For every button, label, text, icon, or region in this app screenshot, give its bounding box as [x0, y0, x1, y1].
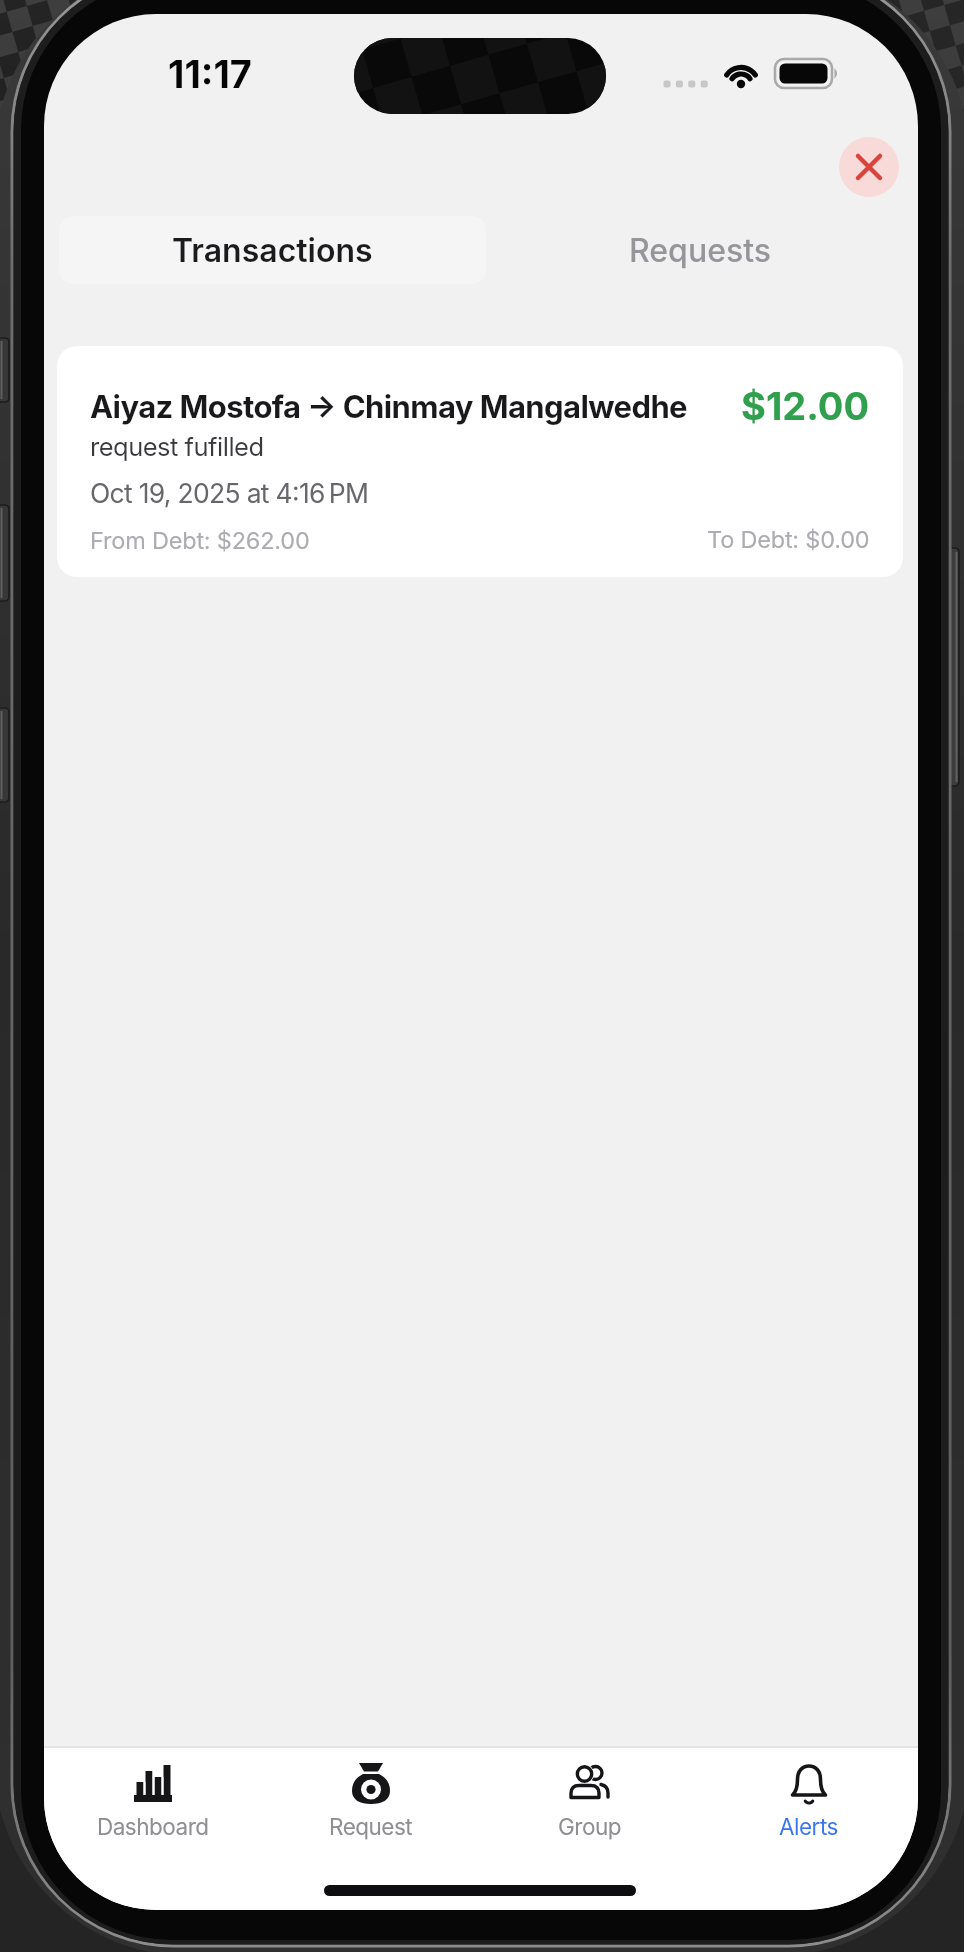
- staticText: To Debt: $0.00: [707, 525, 870, 553]
- staticText: Oct 19, 2025 at 4:16 PM: [90, 477, 369, 509]
- button[interactable]: Group: [480, 1748, 699, 1910]
- staticText: Request: [329, 1813, 413, 1840]
- staticText: request fufilled: [90, 431, 264, 462]
- staticText: Group: [558, 1813, 621, 1840]
- staticText: Alerts: [779, 1813, 838, 1840]
- button[interactable]: [839, 137, 899, 197]
- staticText: Dashboard: [97, 1813, 209, 1840]
- button[interactable]: Requests: [486, 216, 913, 284]
- button[interactable]: Transactions: [59, 216, 486, 284]
- staticText: Aiyaz Mostofa → Chinmay Mangalwedhe: [90, 388, 687, 426]
- staticText: Transactions: [172, 231, 373, 270]
- button[interactable]: Request: [262, 1748, 480, 1910]
- button[interactable]: Dashboard: [44, 1748, 262, 1910]
- staticText: 11:17: [168, 51, 252, 97]
- button[interactable]: Alerts: [699, 1748, 918, 1910]
- staticText: Requests: [629, 231, 771, 270]
- button[interactable]: Aiyaz Mostofa → Chinmay Mangalwedhe: [57, 346, 903, 577]
- staticText: From Debt: $262.00: [90, 526, 310, 554]
- staticText: $12.00: [741, 383, 870, 429]
